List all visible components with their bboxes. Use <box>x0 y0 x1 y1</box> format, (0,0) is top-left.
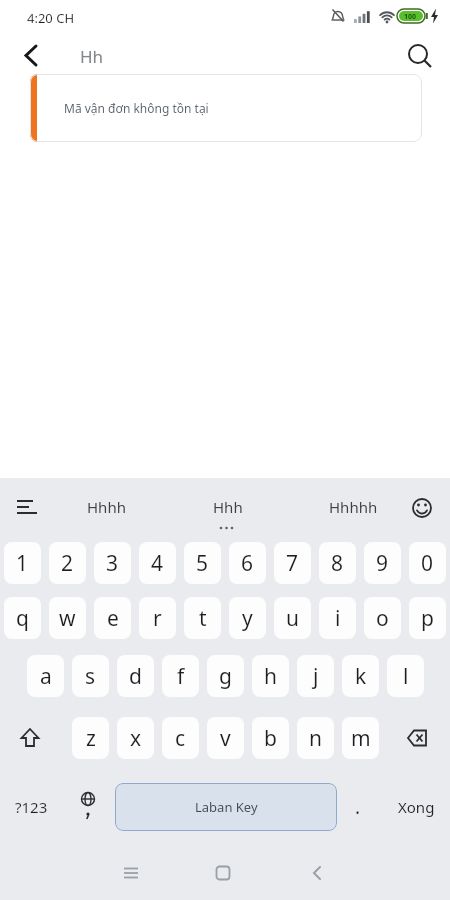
button[interactable]: q <box>4 597 41 639</box>
button[interactable]: o <box>364 597 401 639</box>
staticText: g <box>219 662 232 691</box>
staticText: a <box>40 662 52 691</box>
staticText: l <box>403 662 409 691</box>
staticText: ?123 <box>15 797 48 817</box>
button[interactable] <box>112 854 150 892</box>
button[interactable]: Hhhhh <box>312 492 394 522</box>
button[interactable]: . <box>340 785 376 829</box>
button[interactable]: a <box>27 655 64 697</box>
button[interactable] <box>70 785 106 829</box>
button[interactable] <box>298 854 336 892</box>
button[interactable]: l <box>387 655 424 697</box>
button[interactable]: u <box>274 597 311 639</box>
staticText: 3 <box>106 549 119 578</box>
staticText: t <box>199 604 207 633</box>
staticText: c <box>175 724 186 753</box>
button[interactable]: Xong <box>390 785 442 829</box>
button[interactable]: d <box>117 655 154 697</box>
staticText: w <box>59 604 76 633</box>
staticText: 8 <box>331 549 344 578</box>
button[interactable]: 1 <box>4 542 41 584</box>
button[interactable]: 7 <box>274 542 311 584</box>
button[interactable]: y <box>229 597 266 639</box>
staticText: q <box>16 604 29 633</box>
staticText: Hhhh <box>87 497 126 517</box>
button[interactable]: 9 <box>364 542 401 584</box>
button[interactable]: j <box>297 655 334 697</box>
staticText: Xong <box>398 797 435 817</box>
staticText: d <box>129 662 142 691</box>
button[interactable]: 6 <box>229 542 266 584</box>
staticText: 100 <box>404 12 417 22</box>
button[interactable]: 2 <box>49 542 86 584</box>
staticText: r <box>153 604 162 633</box>
staticText: j <box>313 662 319 691</box>
staticText: k <box>355 662 367 691</box>
staticText: 0 <box>421 549 434 578</box>
button[interactable]: 5 <box>184 542 221 584</box>
staticText: x <box>130 724 142 753</box>
staticText: u <box>286 604 299 633</box>
staticText: 6 <box>241 549 254 578</box>
staticText: 7 <box>286 549 299 578</box>
staticText: . <box>355 794 361 820</box>
button[interactable]: z <box>72 717 109 759</box>
staticText: 9 <box>376 549 389 578</box>
staticText: 5 <box>196 549 209 578</box>
button[interactable] <box>395 717 437 759</box>
button[interactable] <box>14 39 48 73</box>
button[interactable]: s <box>72 655 109 697</box>
button[interactable]: 0 <box>409 542 446 584</box>
staticText: z <box>86 724 96 753</box>
button[interactable]: 4 <box>139 542 176 584</box>
staticText: f <box>177 662 185 691</box>
staticText: Laban Key <box>195 798 258 816</box>
staticText: b <box>264 724 277 753</box>
button[interactable]: Hhh <box>196 492 260 522</box>
staticText: s <box>85 662 96 691</box>
staticText: Hhh <box>213 497 243 517</box>
staticText: 1 <box>16 549 29 578</box>
staticText: h <box>264 662 277 691</box>
button[interactable]: m <box>342 717 379 759</box>
staticText: o <box>376 604 389 633</box>
button[interactable]: e <box>94 597 131 639</box>
button[interactable] <box>10 717 50 759</box>
button[interactable] <box>402 488 442 528</box>
button[interactable]: Laban Key <box>115 783 337 831</box>
button[interactable] <box>402 38 438 74</box>
button[interactable]: 3 <box>94 542 131 584</box>
button[interactable]: x <box>117 717 154 759</box>
button[interactable]: h <box>252 655 289 697</box>
staticText: m <box>351 724 371 753</box>
button[interactable]: p <box>409 597 446 639</box>
staticText: Mã vận đơn không tồn tại <box>64 100 209 116</box>
button[interactable]: r <box>139 597 176 639</box>
button[interactable]: Hhhh <box>62 492 150 522</box>
button[interactable]: w <box>49 597 86 639</box>
button[interactable]: v <box>207 717 244 759</box>
staticText: 4:20 CH <box>27 9 75 27</box>
button[interactable]: 8 <box>319 542 356 584</box>
button[interactable]: t <box>184 597 221 639</box>
staticText: 4 <box>151 549 164 578</box>
staticText: i <box>335 604 341 633</box>
button[interactable]: c <box>162 717 199 759</box>
button[interactable]: n <box>297 717 334 759</box>
button[interactable] <box>8 488 46 526</box>
staticText: Hh <box>80 45 104 68</box>
staticText: n <box>309 724 322 753</box>
button[interactable]: f <box>162 655 199 697</box>
button[interactable]: g <box>207 655 244 697</box>
staticText: 2 <box>61 549 74 578</box>
staticText: e <box>107 604 119 633</box>
staticText: v <box>220 724 231 753</box>
button[interactable]: ?123 <box>8 785 54 829</box>
button[interactable]: Mã vận đơn không tồn tại <box>30 74 422 142</box>
staticText: Hhhhh <box>329 497 378 517</box>
button[interactable] <box>204 854 242 892</box>
button[interactable]: k <box>342 655 379 697</box>
button[interactable]: b <box>252 717 289 759</box>
staticText: p <box>421 604 434 633</box>
button[interactable]: i <box>319 597 356 639</box>
